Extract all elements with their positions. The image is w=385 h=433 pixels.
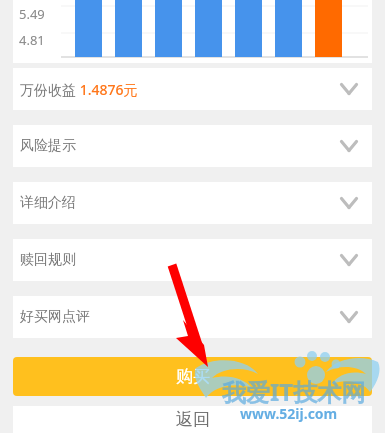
button[interactable]: 详细介绍 [13, 182, 372, 224]
button[interactable]: 赎回规则 [13, 239, 372, 281]
staticText: 4.81 [19, 31, 45, 49]
staticText: 风险提示 [20, 137, 76, 155]
staticText: 赎回规则 [20, 251, 76, 269]
button[interactable]: 风险提示 [13, 125, 372, 167]
other: Expand [339, 79, 359, 99]
other: Expand [339, 136, 359, 156]
staticText: 返回 [176, 409, 210, 430]
button[interactable]: 好买网点评 [13, 296, 372, 338]
other: Expand [339, 307, 359, 327]
staticText: 我爱IT技术网 [222, 375, 366, 408]
other: Expand [339, 193, 359, 213]
button[interactable]: 返回 [13, 406, 372, 433]
staticText: www.52ij.com [240, 404, 338, 423]
staticText: 5.49 [19, 5, 45, 23]
staticText: 万份收益 1.4876元 [20, 80, 138, 99]
staticText: 购买 [176, 366, 210, 387]
button[interactable]: 购买 [13, 357, 372, 396]
other: Expand [339, 250, 359, 270]
staticText: 好买网点评 [20, 308, 90, 326]
button[interactable]: 万份收益 1.4876元 [13, 68, 372, 110]
staticText: 详细介绍 [20, 194, 76, 212]
